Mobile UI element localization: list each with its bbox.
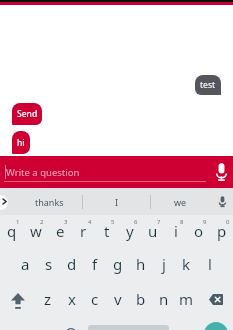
button[interactable]: c: [83, 282, 106, 316]
staticText: e: [56, 221, 65, 241]
button[interactable]: i: [164, 214, 187, 248]
button[interactable]: Shift: [0, 282, 36, 316]
staticText: 9: [203, 218, 207, 226]
button[interactable]: Voice input: [209, 156, 233, 188]
staticText: s: [45, 254, 53, 274]
staticText: i: [174, 221, 178, 241]
button[interactable]: l: [198, 247, 221, 281]
staticText: we: [174, 196, 187, 208]
staticText: o: [194, 221, 204, 241]
staticText: 3: [64, 218, 68, 226]
staticText: k: [182, 254, 191, 274]
staticText: 5: [111, 218, 115, 226]
staticText: f: [92, 254, 98, 274]
button[interactable]: a: [13, 247, 37, 281]
button[interactable]: x: [60, 282, 83, 316]
staticText: n: [159, 289, 169, 309]
button[interactable]: thanks: [17, 188, 82, 215]
staticText: v: [114, 289, 122, 309]
staticText: 7: [157, 218, 161, 226]
staticText: thanks: [35, 196, 64, 208]
staticText: d: [67, 254, 77, 274]
staticText: q: [7, 221, 17, 241]
button[interactable]: f: [83, 247, 106, 281]
button[interactable]: we: [150, 188, 211, 215]
staticText: p: [217, 221, 227, 241]
staticText: c: [91, 289, 99, 309]
staticText: Send: [17, 108, 38, 120]
button[interactable]: g: [106, 247, 129, 281]
staticText: b: [136, 289, 146, 309]
staticText: 8: [180, 218, 184, 226]
button[interactable]: b: [129, 282, 152, 316]
button[interactable]: k: [175, 247, 198, 281]
button[interactable]: n: [152, 282, 175, 316]
staticText: test: [200, 79, 216, 91]
staticText: u: [148, 221, 158, 241]
button[interactable]: Send: [12, 103, 42, 125]
button[interactable]: s: [37, 247, 60, 281]
staticText: w: [30, 221, 42, 241]
button[interactable]: q: [0, 214, 24, 248]
staticText: j: [162, 254, 166, 274]
button[interactable]: o: [187, 214, 210, 248]
button[interactable]: d: [60, 247, 83, 281]
button[interactable]: u: [141, 214, 164, 248]
button[interactable]: I: [82, 188, 151, 215]
button[interactable]: t: [95, 214, 118, 248]
button[interactable]: j: [152, 247, 175, 281]
staticText: hi: [17, 137, 25, 149]
staticText: 2: [40, 218, 44, 226]
button[interactable]: r: [72, 214, 95, 248]
button[interactable]: Voice typing: [211, 188, 233, 215]
staticText: 1: [16, 218, 20, 226]
button[interactable]: v: [106, 282, 129, 316]
button[interactable]: Emoji: [59, 317, 82, 330]
staticText: y: [126, 221, 134, 241]
staticText: m: [179, 289, 194, 309]
staticText: t: [104, 221, 110, 241]
button[interactable]: e: [48, 214, 72, 248]
staticText: z: [44, 289, 52, 309]
button[interactable]: Expand suggestions: [0, 195, 8, 210]
button[interactable]: h: [129, 247, 152, 281]
staticText: I: [115, 196, 119, 208]
staticText: r: [80, 221, 87, 241]
button[interactable]: z: [36, 282, 60, 316]
button[interactable]: y: [118, 214, 141, 248]
staticText: 6: [134, 218, 138, 226]
button[interactable]: test: [195, 75, 221, 95]
staticText: 0: [226, 218, 230, 226]
staticText: a: [21, 254, 30, 274]
staticText: 4: [88, 218, 92, 226]
staticText: Write a question: [6, 166, 80, 179]
staticText: l: [208, 254, 212, 274]
staticText: g: [113, 254, 123, 274]
button[interactable]: m: [175, 282, 198, 316]
button[interactable]: p: [210, 214, 233, 248]
button[interactable]: Send message: [204, 322, 228, 330]
button[interactable]: hi: [12, 131, 30, 154]
staticText: h: [136, 254, 146, 274]
button[interactable]: Backspace: [198, 282, 233, 316]
staticText: x: [68, 289, 76, 309]
button[interactable]: w: [24, 214, 48, 248]
